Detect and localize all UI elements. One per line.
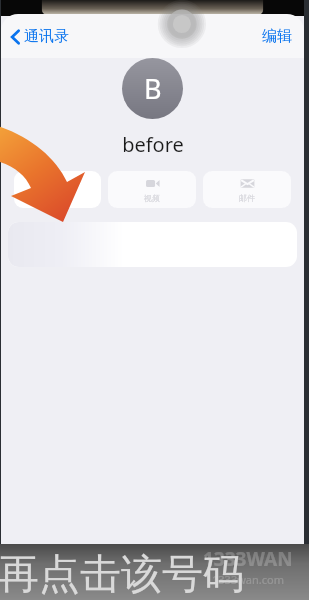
button[interactable] [8, 222, 297, 267]
button[interactable]: 主要 [14, 171, 101, 208]
staticText: 再点击该号码 [0, 549, 244, 600]
staticText: 1333wan.com [212, 572, 284, 587]
staticText: 编辑 [262, 27, 292, 46]
staticText: before [122, 131, 184, 158]
staticText: 通讯录 [24, 27, 69, 46]
button[interactable]: 邮件 [203, 171, 291, 208]
button[interactable]: 编辑 [258, 22, 296, 51]
button[interactable]: 视频 [108, 171, 196, 208]
staticText: 视频 [144, 193, 160, 203]
button[interactable]: 通讯录 [7, 22, 73, 51]
staticText: B [144, 70, 162, 107]
staticText: 邮件 [239, 193, 255, 203]
staticText: 1333WAN [203, 546, 293, 572]
